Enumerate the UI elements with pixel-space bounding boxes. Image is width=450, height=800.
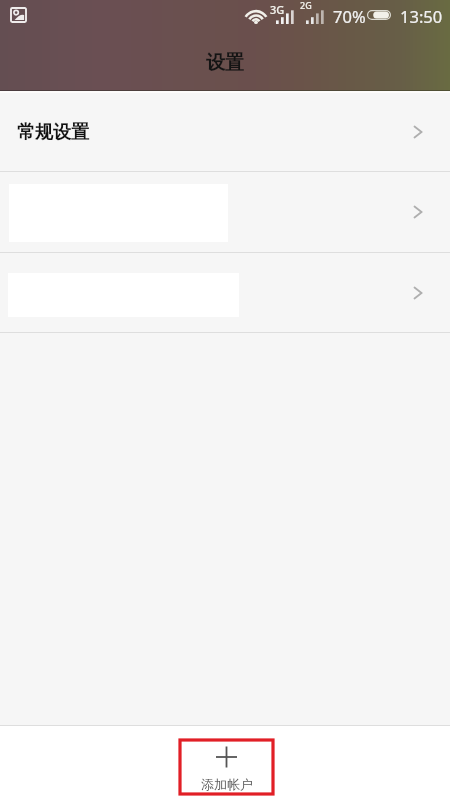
button[interactable] xyxy=(0,253,450,332)
staticText: 70% xyxy=(333,5,366,27)
other: Screenshot notification xyxy=(10,7,27,23)
staticText: 2G xyxy=(300,0,312,11)
staticText: 添加帐户 xyxy=(201,776,253,792)
button[interactable] xyxy=(0,172,450,252)
staticText: 13:50 xyxy=(400,5,443,27)
staticText: 3G xyxy=(270,2,285,17)
staticText: 常规设置 xyxy=(17,121,89,144)
button[interactable]: 添加帐户 xyxy=(180,740,273,794)
button[interactable]: 常规设置 xyxy=(0,93,450,171)
staticText: 设置 xyxy=(206,51,244,75)
